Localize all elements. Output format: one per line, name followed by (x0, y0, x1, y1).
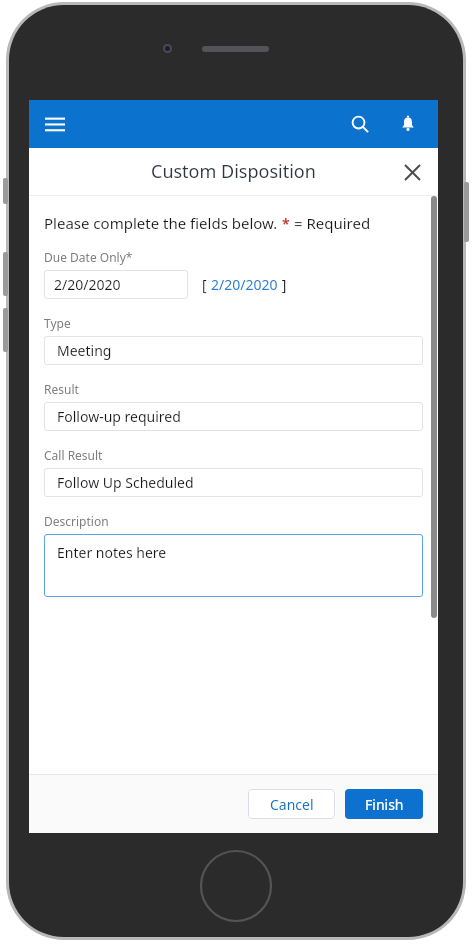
staticText: Cancel (270, 795, 314, 814)
staticText: Enter notes here (57, 543, 167, 562)
button[interactable]: Cancel (248, 789, 335, 819)
staticText: 2/20/2020 (211, 275, 278, 294)
staticText: [ (202, 275, 211, 294)
staticText: Due Date Only* (44, 249, 133, 265)
button[interactable]: Notifications (390, 106, 426, 142)
staticText: ] (278, 275, 287, 294)
button[interactable]: Follow-up required (44, 402, 423, 431)
button[interactable]: Enter notes here (44, 534, 423, 597)
staticText: Custom Disposition (151, 159, 316, 184)
staticText: Please complete the fields below. (44, 213, 282, 233)
button[interactable]: Search (342, 106, 378, 142)
staticText: Call Result (44, 447, 103, 463)
staticText: Finish (365, 795, 404, 814)
staticText: * (282, 214, 290, 233)
button[interactable]: Follow Up Scheduled (44, 468, 423, 497)
staticText: Meeting (57, 341, 112, 360)
staticText: = Required (290, 213, 371, 233)
button[interactable]: Meeting (44, 336, 423, 365)
staticText: 2/20/2020 (54, 275, 121, 294)
staticText: Description (44, 513, 109, 529)
button[interactable]: 2/20/2020 (211, 275, 278, 294)
button[interactable]: Menu (37, 106, 73, 142)
button[interactable]: Close (394, 154, 430, 190)
button[interactable]: Finish (345, 789, 423, 819)
staticText: Follow-up required (57, 407, 181, 426)
button[interactable]: 2/20/2020 (44, 270, 188, 299)
staticText: Follow Up Scheduled (57, 473, 194, 492)
staticText: Result (44, 381, 79, 397)
staticText: Type (44, 315, 71, 331)
